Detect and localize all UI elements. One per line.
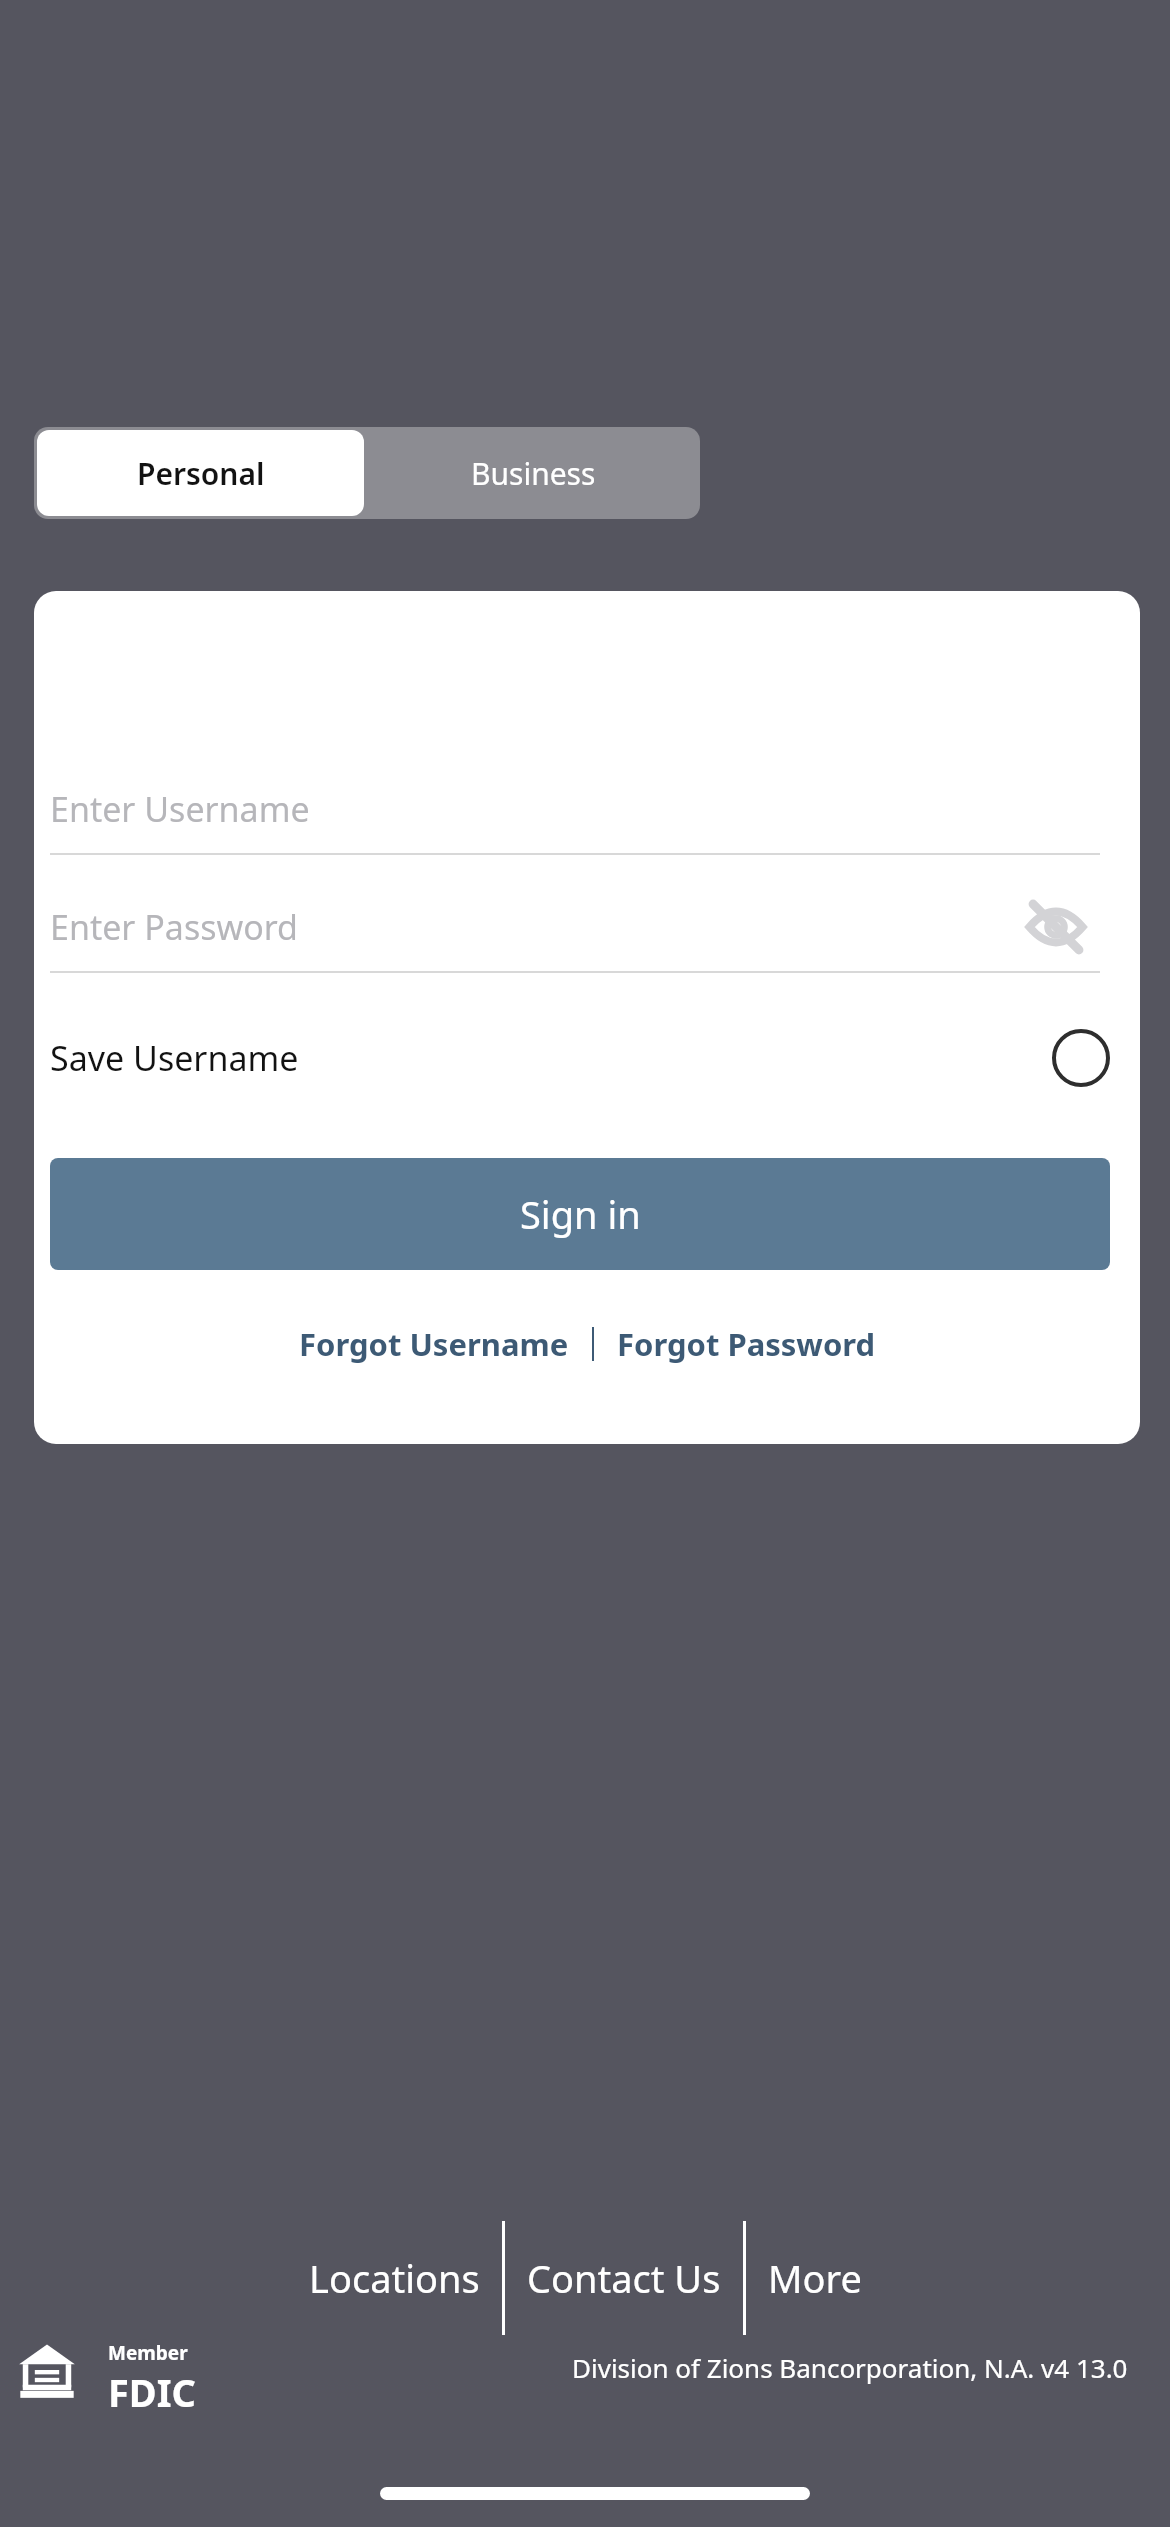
- staticText: Enter Username: [50, 786, 310, 832]
- button[interactable]: Business: [367, 427, 700, 519]
- staticText: Enter Password: [50, 904, 299, 950]
- staticText: Forgot Password: [617, 1323, 876, 1365]
- button[interactable]: Contact Us: [517, 2238, 731, 2318]
- staticText: Contact Us: [527, 2252, 721, 2304]
- button[interactable]: Personal: [37, 430, 364, 516]
- button[interactable]: Locations: [299, 2238, 490, 2318]
- button[interactable]: Enter Password: [50, 881, 1100, 973]
- staticText: Business: [471, 453, 596, 494]
- other: Equal Housing Lender: [18, 2341, 76, 2399]
- button[interactable]: More: [758, 2238, 872, 2318]
- button[interactable]: Show password: [1018, 889, 1094, 965]
- staticText: Locations: [309, 2252, 480, 2304]
- staticText: Member: [108, 2340, 188, 2366]
- staticText: Personal: [137, 453, 265, 494]
- staticText: Division of Zions Bancorporation, N.A. v…: [572, 2350, 1128, 2385]
- staticText: Forgot Username: [299, 1323, 569, 1365]
- staticText: More: [768, 2252, 862, 2304]
- staticText: Save Username: [50, 1035, 299, 1081]
- staticText: FDIC: [108, 2366, 196, 2418]
- button[interactable]: Sign in: [50, 1158, 1110, 1270]
- button[interactable]: Enter Username: [50, 763, 1100, 855]
- button[interactable]: Forgot Password: [611, 1313, 882, 1375]
- other: Member FDIC: [108, 2340, 196, 2418]
- button[interactable]: Forgot Username: [293, 1313, 575, 1375]
- button[interactable]: Save Username: [50, 1011, 1110, 1105]
- staticText: Sign in: [520, 1188, 641, 1240]
